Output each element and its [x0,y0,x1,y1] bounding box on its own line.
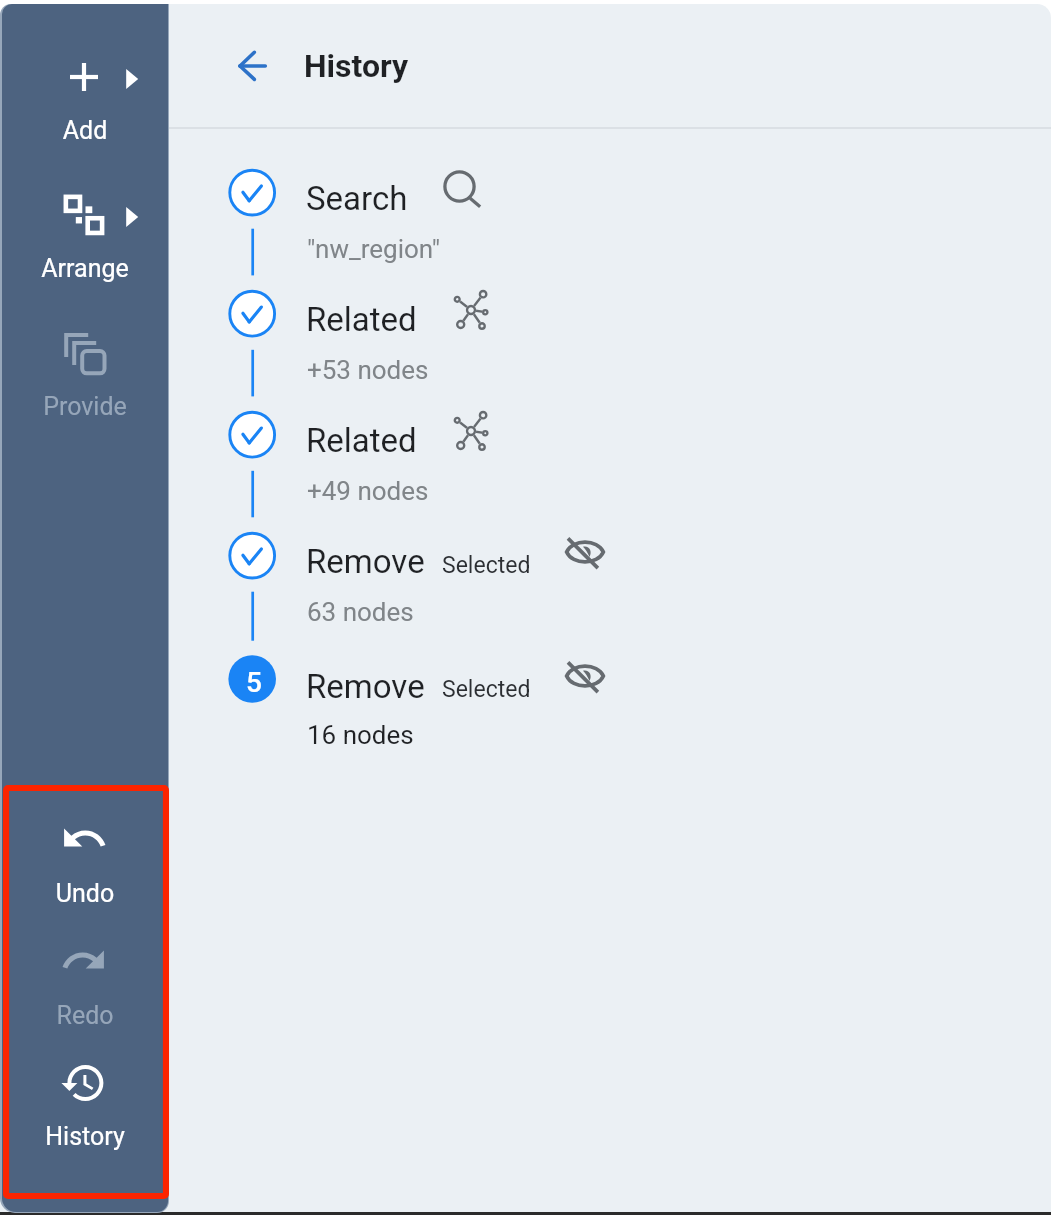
button[interactable] [226,157,1026,267]
button[interactable]: Add [2,52,168,150]
button[interactable]: Hide selected nodes [563,534,608,579]
staticText: Arrange [2,254,168,283]
button[interactable]: Related nodes step [437,292,482,337]
staticText: 63 nodes [307,597,414,627]
staticText: +53 nodes [307,355,429,385]
staticText: Provide [2,392,168,421]
button[interactable]: Redo [2,935,168,1035]
button[interactable]: Hide selected nodes [563,657,608,702]
staticText: Search [306,179,408,218]
button[interactable]: Search step [437,171,482,216]
button[interactable] [226,278,1026,388]
button[interactable]: Provide [2,328,168,426]
staticText: Related [306,421,417,460]
button[interactable]: History [2,1058,168,1156]
button[interactable]: Undo [2,813,168,913]
button[interactable] [226,520,1026,630]
staticText: Add [2,116,168,145]
staticText: Related [306,300,417,339]
button[interactable]: Arrange [2,190,168,288]
staticText: 16 nodes [307,720,414,750]
staticText: History [304,47,409,85]
staticText: History [2,1122,168,1151]
staticText: Remove [306,542,425,581]
button[interactable]: Related nodes step [437,413,482,458]
staticText: Redo [2,1001,168,1030]
button[interactable] [226,399,1026,509]
button[interactable]: Back [232,45,274,87]
staticText: Undo [2,879,168,908]
button[interactable] [226,643,1026,753]
staticText: +49 nodes [307,476,429,506]
staticText: Selected [442,552,531,579]
staticText: Selected [442,676,531,703]
staticText: "nw_region" [307,234,441,264]
staticText: Remove [306,667,425,706]
staticText: 5 [246,666,262,699]
